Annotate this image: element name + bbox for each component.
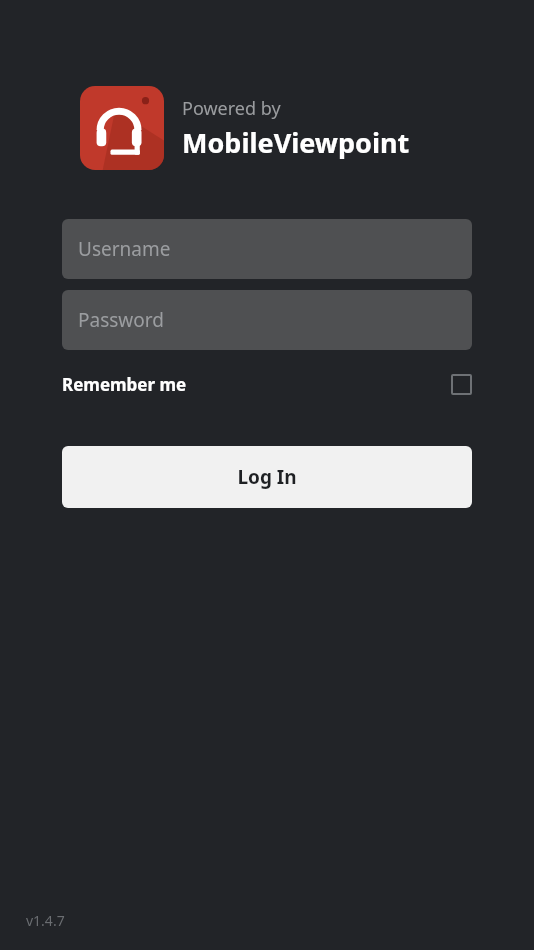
button[interactable]: Log In	[62, 446, 472, 508]
staticText: v1.4.7	[26, 911, 65, 930]
staticText: Log In	[237, 464, 297, 490]
other: Remember me checkbox	[451, 374, 472, 395]
staticText: Username	[78, 236, 171, 262]
button[interactable]: Remember me	[62, 366, 472, 402]
staticText: MobileViewpoint	[182, 124, 410, 161]
staticText: Remember me	[62, 373, 187, 396]
button[interactable]: Username	[62, 219, 472, 279]
staticText: Password	[78, 307, 164, 333]
staticText: Powered by	[182, 96, 281, 121]
other: MobileViewpoint logo	[80, 86, 164, 170]
button[interactable]: Password	[62, 290, 472, 350]
